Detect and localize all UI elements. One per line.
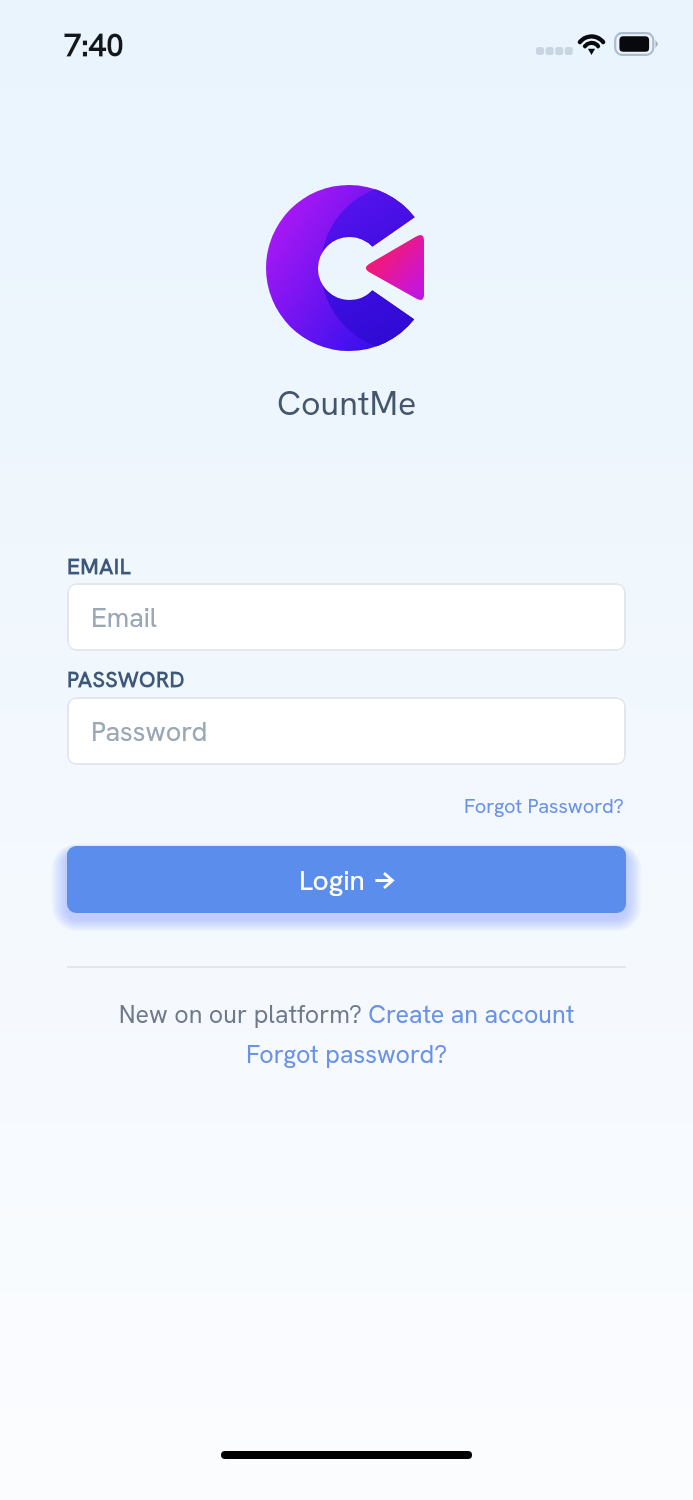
staticText: 7:40: [64, 25, 124, 65]
button[interactable]: New on our platform? Create an account F…: [30, 998, 663, 1070]
staticText: CountMe: [277, 381, 417, 425]
button[interactable]: Login: [67, 846, 626, 913]
button[interactable]: Password: [67, 697, 626, 765]
staticText: Login: [299, 862, 365, 898]
staticText: Password: [91, 714, 208, 749]
staticText: PASSWORD: [67, 665, 185, 694]
button[interactable]: Forgot Password?: [462, 791, 626, 821]
button[interactable]: Email: [67, 583, 626, 651]
staticText: Email: [91, 600, 157, 635]
staticText: Forgot Password?: [464, 793, 624, 819]
staticText: EMAIL: [67, 552, 132, 581]
